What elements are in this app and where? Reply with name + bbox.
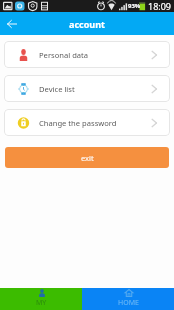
staticText: Change the password xyxy=(39,118,117,128)
button[interactable]: Personal data xyxy=(4,41,170,68)
button[interactable]: exit xyxy=(5,147,169,168)
button[interactable]: Change the password xyxy=(4,109,170,136)
button[interactable]: Device list xyxy=(4,75,170,102)
staticText: 93% xyxy=(128,2,141,10)
staticText: Device list xyxy=(39,84,75,94)
staticText: Personal data xyxy=(39,50,89,60)
staticText: MY xyxy=(36,298,47,308)
staticText: 18:09 xyxy=(148,0,172,12)
button[interactable]: HOME xyxy=(82,288,174,310)
staticText: account xyxy=(69,18,105,30)
staticText: exit xyxy=(81,153,94,163)
staticText: HOME xyxy=(118,298,139,308)
button[interactable]: MY xyxy=(0,288,82,310)
button[interactable]: Back xyxy=(0,12,23,35)
